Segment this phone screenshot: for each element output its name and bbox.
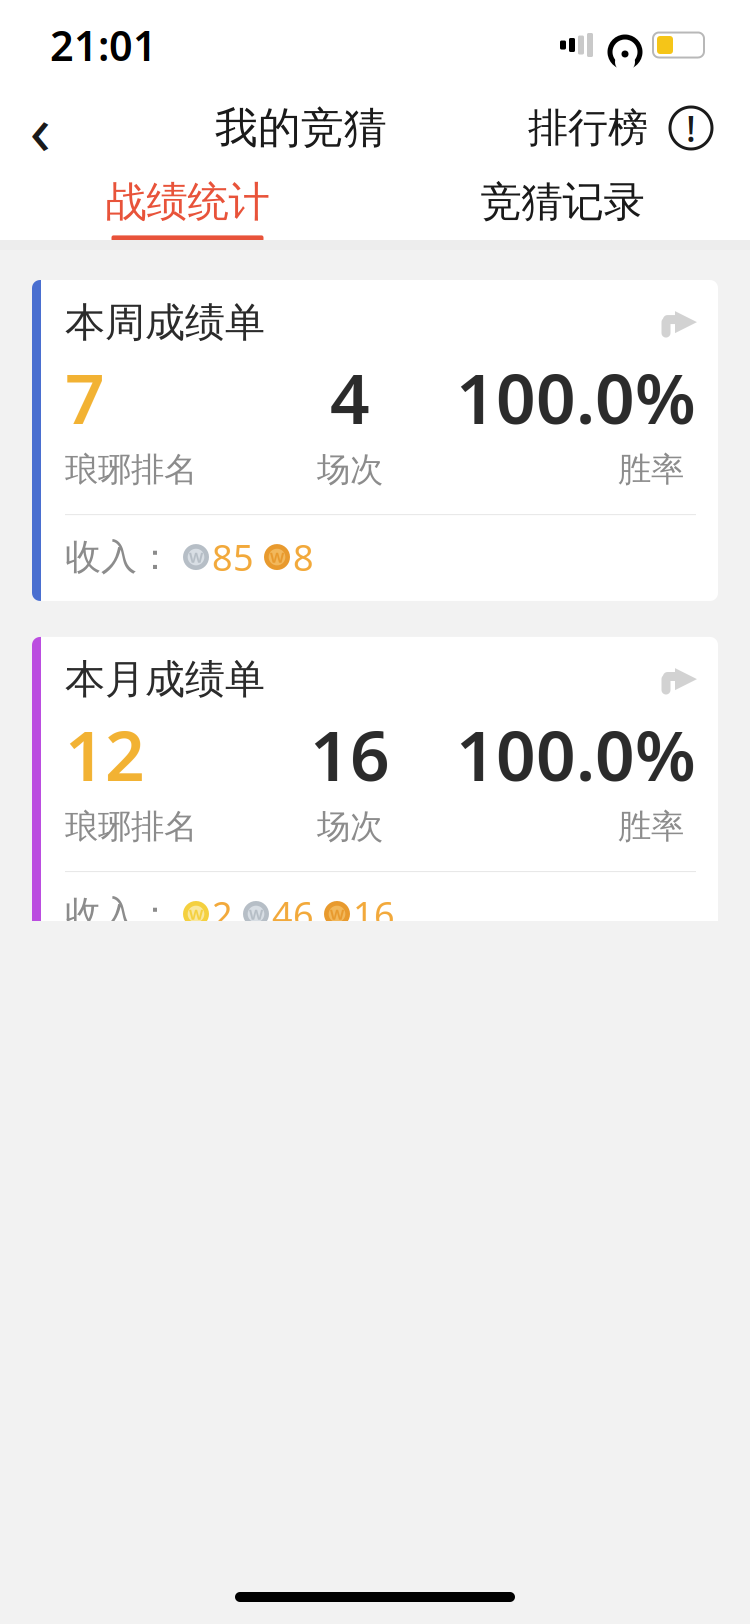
staticText: 2: [212, 890, 233, 938]
staticText: 46: [272, 890, 314, 938]
staticText: 我的竞猜: [215, 102, 387, 154]
button[interactable]: Info: [654, 93, 728, 163]
staticText: 4: [330, 351, 370, 443]
staticText: 本月成绩单: [65, 655, 265, 704]
staticText: 琅琊排名: [65, 449, 197, 490]
staticText: 7: [65, 351, 105, 443]
staticText: 排行榜: [528, 103, 648, 152]
staticText: W: [270, 547, 284, 567]
staticText: ▶: [674, 303, 697, 336]
staticText: ‹: [29, 82, 50, 174]
staticText: 收入：: [65, 535, 173, 579]
staticText: 100.0%: [456, 351, 696, 443]
button[interactable]: 排行榜: [522, 93, 654, 163]
staticText: 16: [353, 890, 395, 938]
staticText: W: [249, 904, 263, 924]
staticText: 战绩统计: [105, 177, 269, 227]
button[interactable]: 本月成绩单: [32, 637, 718, 958]
staticText: 竞猜记录: [480, 177, 644, 227]
staticText: !: [686, 104, 696, 152]
staticText: 12: [65, 708, 145, 800]
button[interactable]: 竞猜记录: [375, 165, 750, 241]
staticText: 琅琊排名: [65, 806, 197, 847]
staticText: 100.0%: [456, 708, 696, 800]
staticText: 胜率: [618, 449, 684, 490]
staticText: 场次: [317, 449, 383, 490]
staticText: W: [189, 904, 203, 924]
staticText: 16: [310, 708, 390, 800]
staticText: ▶: [674, 660, 697, 693]
staticText: W: [189, 547, 203, 567]
button[interactable]: 战绩统计: [0, 165, 375, 241]
button[interactable]: 本周成绩单: [32, 280, 718, 601]
staticText: 胜率: [618, 806, 684, 847]
staticText: 8: [293, 533, 314, 581]
staticText: 收入：: [65, 892, 173, 936]
staticText: 21:01: [50, 18, 157, 72]
staticText: W: [330, 904, 344, 924]
button[interactable]: Back: [0, 93, 80, 163]
staticText: 场次: [317, 806, 383, 847]
staticText: 85: [212, 533, 254, 581]
staticText: 本周成绩单: [65, 298, 265, 347]
